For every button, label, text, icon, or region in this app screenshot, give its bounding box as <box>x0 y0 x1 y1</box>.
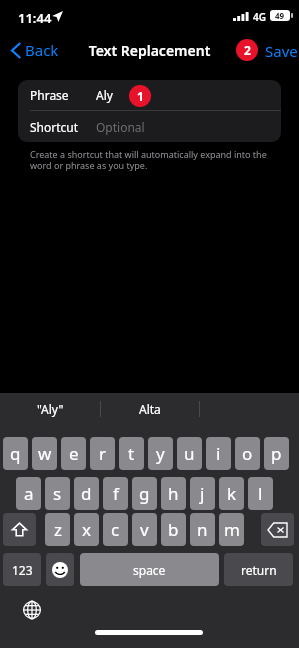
button[interactable]: space <box>80 553 219 586</box>
staticText: o <box>242 442 253 465</box>
staticText: r <box>99 442 107 465</box>
button[interactable]: r <box>90 437 115 470</box>
button[interactable]: "Aly" <box>0 393 100 425</box>
staticText: h <box>168 482 179 505</box>
button[interactable]: Alta <box>100 393 199 425</box>
button[interactable]: j <box>190 477 215 510</box>
button[interactable]: Shortcut <box>18 111 281 142</box>
staticText: l <box>258 482 263 505</box>
button[interactable]: Save <box>262 38 299 64</box>
button[interactable]: n <box>190 513 215 546</box>
staticText: Create a shortcut that will automaticall… <box>30 148 280 172</box>
button[interactable]: Phrase <box>18 80 281 110</box>
button[interactable]: x <box>74 513 99 546</box>
staticText: Save <box>265 41 298 61</box>
staticText: k <box>227 482 237 505</box>
button[interactable]: m <box>219 513 244 546</box>
button[interactable]: t <box>119 437 144 470</box>
staticText: Optional <box>96 119 145 135</box>
button[interactable]: a <box>16 477 41 510</box>
staticText: 11:44 <box>18 9 52 27</box>
button[interactable]: g <box>132 477 157 510</box>
button[interactable]: o <box>235 437 260 470</box>
staticText: Aly <box>96 87 113 103</box>
staticText: v <box>140 518 149 541</box>
staticText: q <box>10 442 21 465</box>
staticText: b <box>168 518 179 541</box>
staticText: Shortcut <box>30 119 79 135</box>
staticText: 1 <box>137 88 144 104</box>
staticText: 49 <box>275 10 285 21</box>
staticText: y <box>156 442 165 465</box>
button[interactable]: u <box>177 437 202 470</box>
staticText: Alta <box>139 401 161 417</box>
button[interactable]: w <box>32 437 57 470</box>
staticText: c <box>111 518 120 541</box>
button[interactable]: z <box>45 513 70 546</box>
staticText: z <box>54 518 62 541</box>
button[interactable]: e <box>61 437 86 470</box>
staticText: x <box>82 518 91 541</box>
button[interactable]: l <box>248 477 273 510</box>
staticText: return <box>241 562 277 578</box>
staticText: e <box>69 442 79 465</box>
staticText: Text Replacement <box>0 41 299 60</box>
staticText: w <box>38 442 52 465</box>
staticText: "Aly" <box>37 401 64 417</box>
button[interactable]: return <box>224 553 293 586</box>
button[interactable]: i <box>206 437 231 470</box>
button[interactable]: Emoji <box>46 553 74 586</box>
staticText: m <box>224 518 240 541</box>
staticText: g <box>139 482 150 505</box>
button[interactable]: h <box>161 477 186 510</box>
staticText: u <box>184 442 195 465</box>
staticText: t <box>128 442 135 465</box>
staticText: space <box>133 562 166 578</box>
staticText: f <box>113 482 119 505</box>
button[interactable]: q <box>3 437 28 470</box>
button[interactable]: s <box>45 477 70 510</box>
button[interactable]: d <box>74 477 99 510</box>
button[interactable]: Shift <box>3 513 36 546</box>
button[interactable]: Back <box>8 37 63 63</box>
button[interactable]: k <box>219 477 244 510</box>
staticText: a <box>24 482 34 505</box>
staticText: d <box>81 482 92 505</box>
button[interactable]: Switch keyboard language <box>20 598 44 622</box>
button[interactable]: b <box>161 513 186 546</box>
staticText: n <box>197 518 208 541</box>
button[interactable]: y <box>148 437 173 470</box>
staticText: i <box>216 442 221 465</box>
button[interactable]: c <box>103 513 128 546</box>
button[interactable]: f <box>103 477 128 510</box>
button[interactable]: Backspace <box>261 513 294 546</box>
button[interactable]: v <box>132 513 157 546</box>
staticText: s <box>53 482 62 505</box>
staticText: p <box>271 442 282 465</box>
staticText: Phrase <box>30 87 69 103</box>
staticText: j <box>200 482 205 505</box>
staticText: 2 <box>244 42 251 58</box>
staticText: 4G <box>253 10 266 24</box>
button[interactable]: 123 <box>3 553 41 586</box>
staticText: 123 <box>12 562 33 578</box>
staticText: Back <box>25 40 59 60</box>
button[interactable]: p <box>264 437 289 470</box>
